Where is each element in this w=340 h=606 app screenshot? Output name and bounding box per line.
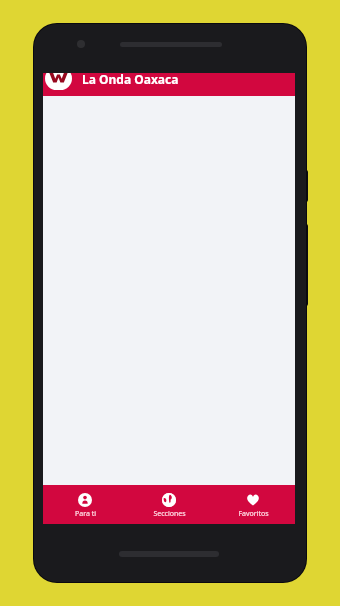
staticText: Para ti <box>75 509 96 519</box>
button[interactable]: La Onda Oaxaca <box>43 73 295 96</box>
staticText: La Onda Oaxaca <box>82 73 179 87</box>
staticText: Secciones <box>153 509 186 519</box>
button[interactable]: Favoritos <box>211 487 295 522</box>
button[interactable]: Secciones <box>127 487 211 522</box>
button[interactable]: Para ti <box>43 487 127 522</box>
staticText: Favoritos <box>238 509 269 519</box>
